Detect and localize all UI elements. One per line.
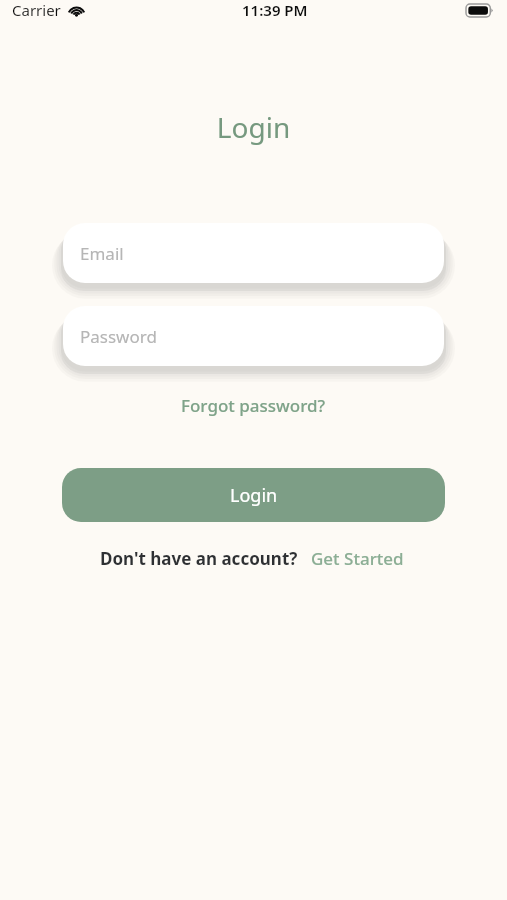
staticText: Password	[80, 325, 157, 348]
button[interactable]: Password	[63, 306, 444, 366]
staticText: Get Started	[311, 547, 404, 570]
button[interactable]: Forgot password?	[175, 391, 332, 420]
staticText: Login	[230, 483, 278, 508]
button[interactable]: Get Started	[308, 544, 407, 573]
button[interactable]: Login	[62, 468, 445, 522]
staticText: Carrier	[12, 0, 61, 20]
staticText: Email	[80, 242, 124, 265]
button[interactable]: Email	[63, 223, 444, 283]
staticText: Forgot password?	[181, 394, 326, 417]
staticText: Login	[0, 108, 507, 146]
staticText: Don't have an account?	[100, 547, 298, 570]
staticText: 11:39 PM	[242, 0, 308, 20]
